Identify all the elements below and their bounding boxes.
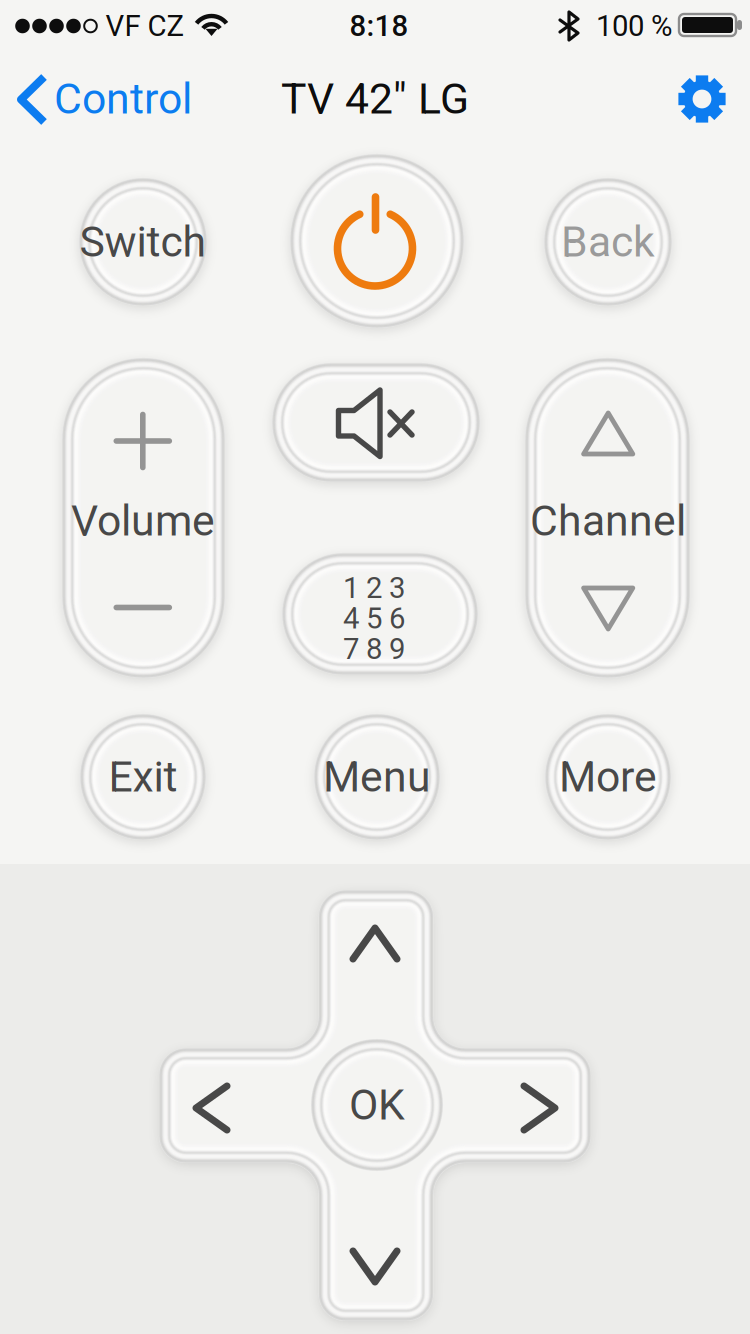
staticText: Volume	[71, 496, 215, 546]
staticText: 100 %	[596, 9, 672, 43]
staticText: 1 2 3	[343, 571, 405, 605]
button[interactable]: Exit	[80, 714, 206, 840]
button[interactable]: Control	[28, 61, 218, 137]
button[interactable]: Settings	[666, 64, 736, 134]
button[interactable]: More	[545, 714, 671, 840]
staticText: 4 5 6	[343, 601, 405, 636]
button[interactable]: Back	[544, 178, 672, 306]
button[interactable]: Switch	[79, 178, 207, 306]
staticText: VF CZ	[105, 9, 184, 43]
staticText: Channel	[530, 496, 686, 546]
staticText: 7 8 9	[343, 632, 405, 666]
staticText: Back	[561, 217, 655, 267]
staticText: More	[559, 752, 657, 802]
staticText: 8:18	[349, 9, 408, 43]
staticText: Menu	[323, 752, 431, 802]
staticText: Control	[54, 74, 192, 124]
staticText: Exit	[108, 752, 177, 802]
button[interactable]: Left	[158, 1049, 303, 1161]
staticText: OK	[349, 1080, 405, 1130]
button[interactable]: OK	[312, 1040, 442, 1170]
button[interactable]: Up	[318, 889, 434, 1034]
button[interactable]: Right	[447, 1049, 592, 1161]
staticText: Switch	[79, 217, 206, 267]
button[interactable]: Menu	[314, 714, 440, 840]
staticText: TV 42" LG	[281, 74, 469, 124]
button[interactable]: Down	[318, 1175, 434, 1320]
